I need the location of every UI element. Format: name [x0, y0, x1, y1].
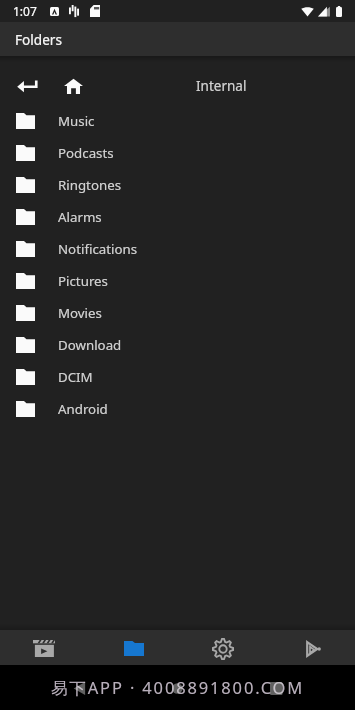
button[interactable]: Internal	[196, 77, 247, 95]
staticText: DCIM	[58, 368, 93, 386]
button[interactable]: Pictures	[0, 265, 355, 297]
staticText: Notifications	[58, 240, 138, 258]
button[interactable]: Music	[0, 105, 355, 137]
button[interactable]: Movies	[0, 297, 355, 329]
button[interactable]: Download	[0, 329, 355, 361]
staticText: Music	[58, 112, 95, 130]
button[interactable]: Videos	[0, 630, 88, 665]
button[interactable]: Podcasts	[0, 137, 355, 169]
button[interactable]: Notifications	[0, 233, 355, 265]
button[interactable]: Home	[55, 68, 91, 104]
staticText: Alarms	[58, 208, 102, 226]
staticText: Android	[58, 400, 108, 418]
button[interactable]: Ringtones	[0, 169, 355, 201]
button[interactable]: Folders	[88, 630, 177, 665]
button[interactable]: Alarms	[0, 201, 355, 233]
button[interactable]: DCIM	[0, 361, 355, 393]
staticText: 易下APP · 4008891800.COM	[51, 676, 305, 699]
staticText: Podcasts	[58, 144, 114, 162]
staticText: 1:07	[13, 3, 37, 19]
staticText: Folders	[15, 30, 62, 49]
staticText: Pictures	[58, 272, 108, 290]
button[interactable]: Cast	[266, 630, 355, 665]
staticText: Movies	[58, 304, 102, 322]
button[interactable]: Android	[0, 393, 355, 425]
staticText: Ringtones	[58, 176, 122, 194]
button[interactable]: Settings	[177, 630, 266, 665]
button[interactable]: Up one level	[9, 68, 45, 104]
staticText: Download	[58, 336, 122, 354]
